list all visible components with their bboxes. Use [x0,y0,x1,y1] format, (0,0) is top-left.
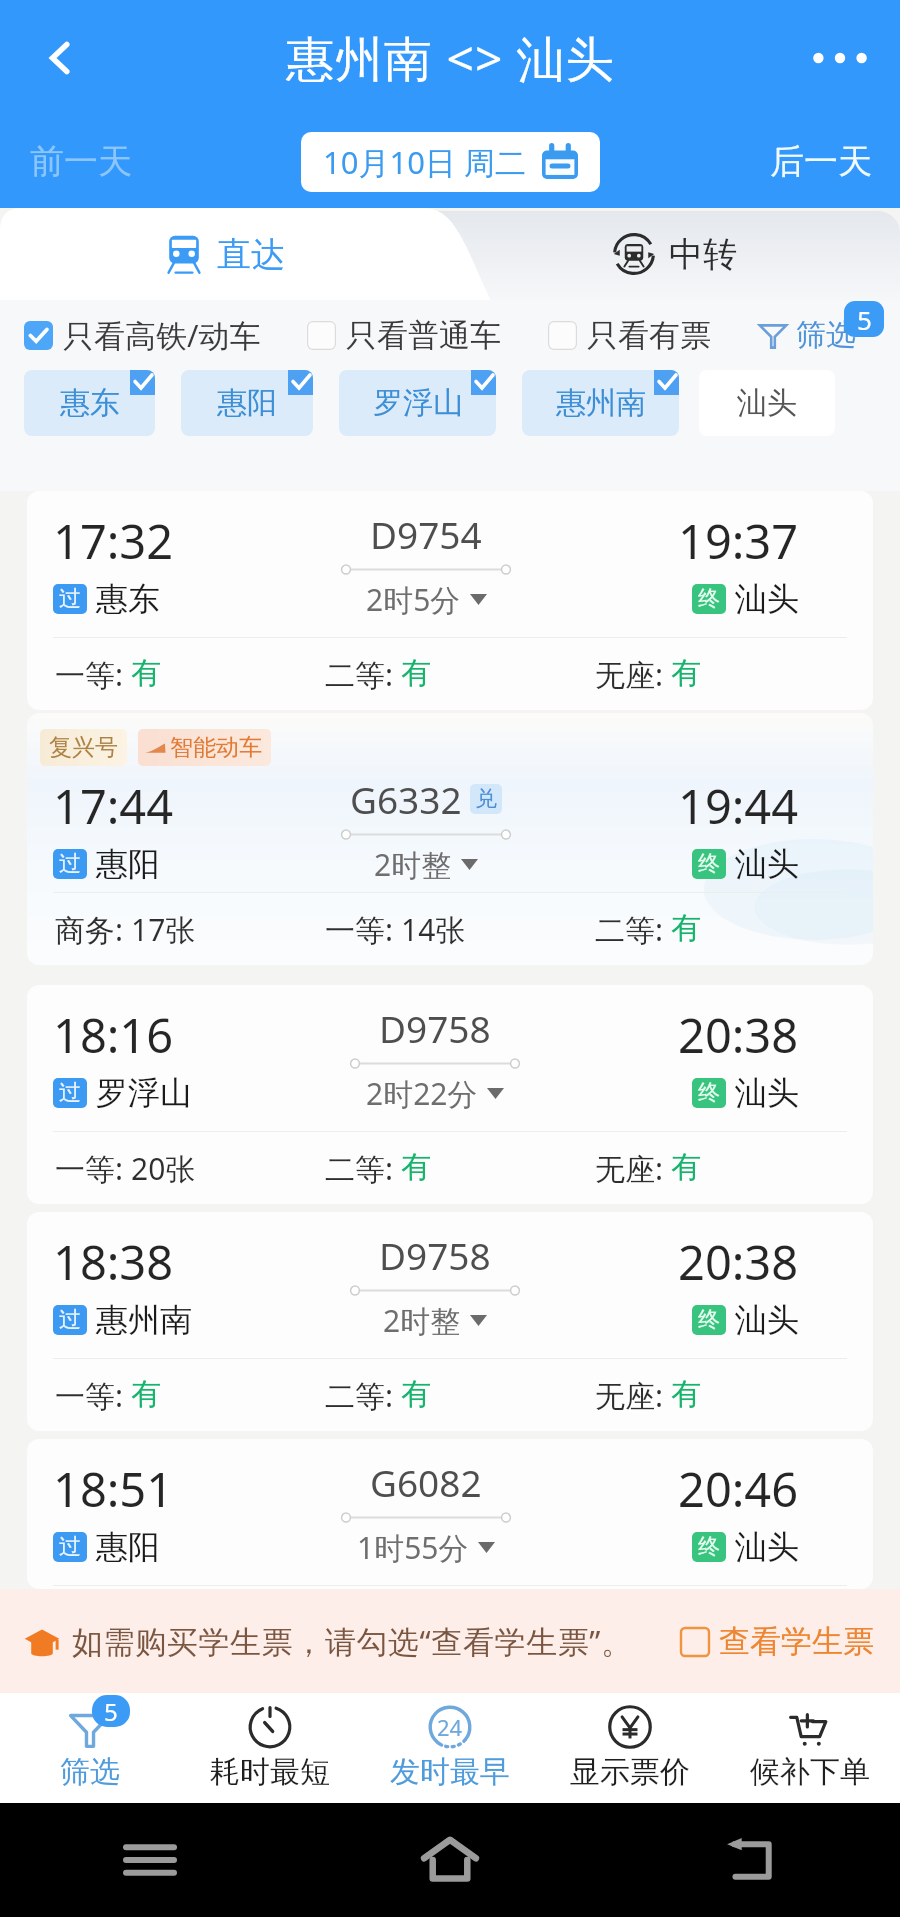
staticText: 有 [401,654,431,692]
staticText: 一等: [55,1148,131,1189]
button[interactable]: 汕头 [699,370,835,436]
button[interactable]: 耗时最短 [180,1693,360,1803]
button[interactable]: 18:38 [27,1212,873,1431]
staticText: 惠阳 [96,844,160,884]
button[interactable]: 5 [0,1693,180,1803]
staticText: 中转 [669,233,737,276]
staticText: 只看普通车 [346,316,501,355]
staticText: 20:38 [678,1003,799,1067]
staticText: 兑 [475,785,497,813]
staticText: 有 [671,1148,701,1186]
button[interactable]: 10月10日 周二 [301,132,600,192]
button[interactable]: 18:51 [27,1439,873,1589]
button[interactable]: Back [600,1803,900,1917]
button[interactable]: 17:32 [27,491,873,710]
staticText: 一等: [55,654,131,695]
staticText: 汕头 [737,384,797,422]
staticText: 2时整 [383,1300,461,1341]
staticText: 19:37 [678,509,799,573]
staticText: 汕头 [735,1527,799,1567]
staticText: 18:51 [53,1457,174,1521]
staticText: 罗浮山 [96,1073,192,1113]
button[interactable]: 罗浮山 [339,370,496,436]
staticText: 二等: [325,1375,401,1416]
staticText: 发时最早 [390,1753,510,1791]
staticText: 只看高铁/动车 [63,314,261,356]
staticText: 17张 [131,909,196,950]
button[interactable]: 筛选 [758,316,856,354]
staticText: 惠阳 [217,384,277,422]
staticText: 二等: [595,909,671,950]
button[interactable]: 惠州南 [522,370,679,436]
staticText: 惠州南 [96,1300,192,1340]
staticText: 复兴号 [49,733,118,762]
staticText: 14张 [401,909,466,950]
staticText: 无座: [595,1375,671,1416]
staticText: 17:44 [53,774,174,838]
staticText: 惠州南 <> 汕头 [286,25,615,91]
button[interactable]: 只看高铁/动车 [24,314,261,356]
staticText: 有 [401,1375,431,1413]
button[interactable]: 中转 [450,208,900,300]
button[interactable]: Back [28,26,92,90]
staticText: 二等: [325,1148,401,1189]
staticText: 过 [59,850,81,878]
staticText: 终 [698,1533,720,1561]
button[interactable]: Recents [0,1803,300,1917]
staticText: 汕头 [735,579,799,619]
button[interactable]: Home [300,1803,600,1917]
staticText: 无座: [595,654,671,695]
button[interactable]: 惠阳 [181,370,313,436]
staticText: 过 [59,1533,81,1561]
button[interactable]: 复兴号 [27,713,873,965]
staticText: 只看有票 [587,316,711,355]
button[interactable]: 后一天 [758,128,884,195]
button[interactable]: 候补下单 [720,1693,900,1803]
staticText: 2时5分 [366,579,461,620]
staticText: 5 [104,1695,118,1727]
button[interactable]: 直达 [0,208,450,300]
staticText: 过 [59,1306,81,1334]
staticText: 20:46 [678,1457,799,1521]
staticText: 如需购买学生票，请勾选“查看学生票”。 [72,1620,633,1662]
button[interactable]: 惠东 [24,370,155,436]
staticText: 直达 [217,233,285,276]
staticText: D9758 [379,1003,491,1053]
staticText: 17:32 [53,509,174,573]
staticText: 5 [857,302,872,337]
button[interactable]: 只看有票 [548,316,711,355]
staticText: 18:38 [53,1230,174,1294]
staticText: D9758 [379,1230,491,1280]
button[interactable]: 显示票价 [540,1693,720,1803]
staticText: 汕头 [735,1300,799,1340]
staticText: 一等: [55,1375,131,1416]
staticText: 惠阳 [96,1527,160,1567]
staticText: 后一天 [770,140,872,183]
staticText: 一等: [325,909,401,950]
staticText: 汕头 [735,1073,799,1113]
button[interactable]: 前一天 [18,128,144,195]
staticText: D9754 [370,509,482,559]
staticText: 查看学生票 [719,1622,874,1661]
staticText: 有 [671,1375,701,1413]
staticText: 终 [698,585,720,613]
staticText: 筛选 [60,1753,120,1791]
staticText: 有 [671,654,701,692]
staticText: 20:38 [678,1230,799,1294]
button[interactable]: 只看普通车 [307,316,501,355]
staticText: 候补下单 [750,1753,870,1791]
staticText: 惠州南 [556,384,646,422]
button[interactable]: 24 [360,1693,540,1803]
staticText: G6082 [370,1457,482,1507]
staticText: 过 [59,585,81,613]
staticText: 19:44 [678,774,799,838]
staticText: 惠东 [96,579,160,619]
staticText: G6332 [350,774,462,824]
button[interactable]: 查看学生票 [681,1622,874,1661]
button[interactable]: 18:16 [27,985,873,1204]
button[interactable]: More options [808,26,872,90]
